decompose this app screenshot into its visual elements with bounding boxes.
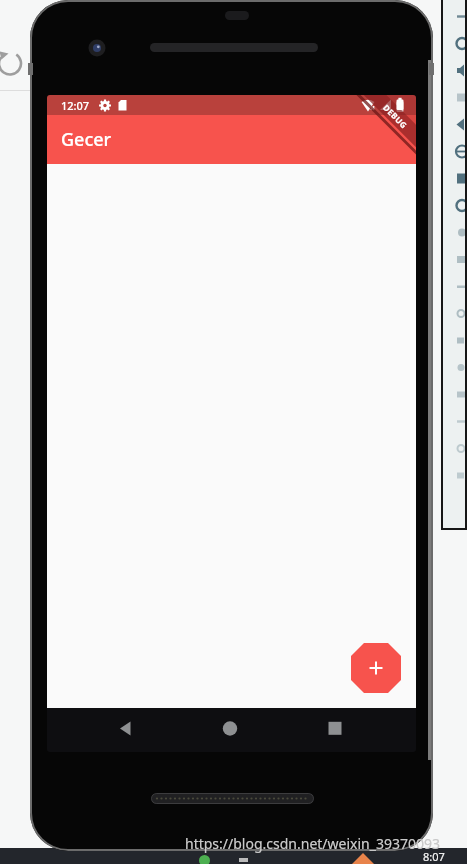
button[interactable] bbox=[455, 192, 467, 219]
button[interactable] bbox=[455, 111, 467, 138]
button[interactable] bbox=[455, 3, 467, 30]
staticText: 8:07 bbox=[423, 849, 445, 864]
button[interactable] bbox=[118, 721, 134, 737]
button[interactable] bbox=[455, 30, 467, 57]
button[interactable] bbox=[455, 165, 467, 192]
button[interactable] bbox=[455, 408, 467, 435]
button[interactable] bbox=[455, 219, 467, 246]
button[interactable] bbox=[327, 721, 343, 737]
staticText: 12:07 bbox=[61, 98, 90, 113]
button[interactable] bbox=[455, 246, 467, 273]
staticText: Gecer bbox=[61, 127, 112, 152]
button[interactable] bbox=[351, 643, 401, 693]
staticText: https://blog.csdn.net/weixin_39370093 bbox=[185, 834, 441, 853]
staticText: DEBUG bbox=[381, 102, 410, 131]
button[interactable] bbox=[455, 354, 467, 381]
button[interactable] bbox=[455, 138, 467, 165]
button[interactable] bbox=[455, 327, 467, 354]
button[interactable] bbox=[455, 381, 467, 408]
button[interactable] bbox=[455, 300, 467, 327]
button[interactable] bbox=[455, 84, 467, 111]
button[interactable] bbox=[455, 462, 467, 489]
button[interactable] bbox=[455, 435, 467, 462]
button[interactable] bbox=[222, 721, 238, 737]
button[interactable] bbox=[455, 57, 467, 84]
button[interactable] bbox=[455, 273, 467, 300]
